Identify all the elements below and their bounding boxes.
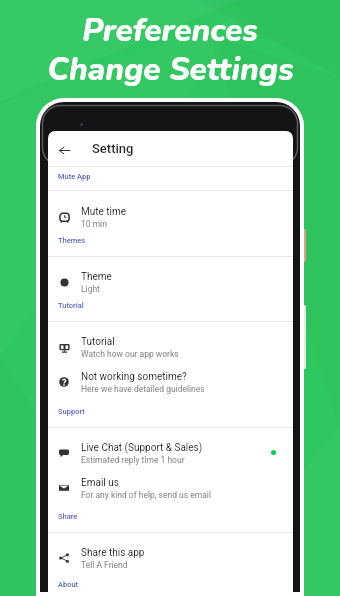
staticText: Mute App <box>58 172 91 181</box>
staticText: Share <box>58 512 78 521</box>
staticText: About <box>58 580 79 589</box>
button[interactable]: Not working sometime? <box>48 370 293 398</box>
button[interactable]: Mute time <box>48 205 293 233</box>
staticText: Live Chat (Support & Sales) <box>81 442 203 454</box>
staticText: Setting <box>92 141 134 156</box>
button[interactable]: Back <box>57 143 71 157</box>
staticText: Share this app <box>81 547 145 559</box>
staticText: 10 min <box>81 219 107 229</box>
button[interactable]: Live Chat (Support & Sales) <box>48 441 293 469</box>
staticText: Change Settings <box>47 48 294 91</box>
button[interactable]: Share this app <box>48 546 293 574</box>
staticText: Tutorial <box>58 301 84 310</box>
staticText: Themes <box>58 236 86 245</box>
staticText: For any kind of help, send us email <box>81 490 211 500</box>
button[interactable]: Back <box>48 131 293 166</box>
button[interactable]: Theme <box>48 270 293 298</box>
staticText: Tutorial <box>81 336 115 348</box>
button[interactable]: Tutorial <box>48 335 293 363</box>
staticText: Email us <box>81 477 119 489</box>
staticText: Theme <box>81 271 112 283</box>
staticText: Tell A Friend <box>81 560 128 570</box>
staticText: Mute time <box>81 206 127 218</box>
button[interactable]: Email us <box>48 476 293 504</box>
staticText: Not working sometime? <box>81 371 187 383</box>
staticText: Here we have detailed guidelines <box>81 384 205 394</box>
staticText: Estimated reply time 1 hour <box>81 455 185 465</box>
staticText: Watch how our app works <box>81 349 179 359</box>
staticText: Preferences <box>82 9 258 52</box>
staticText: Support <box>58 407 85 416</box>
staticText: Light <box>81 284 100 294</box>
